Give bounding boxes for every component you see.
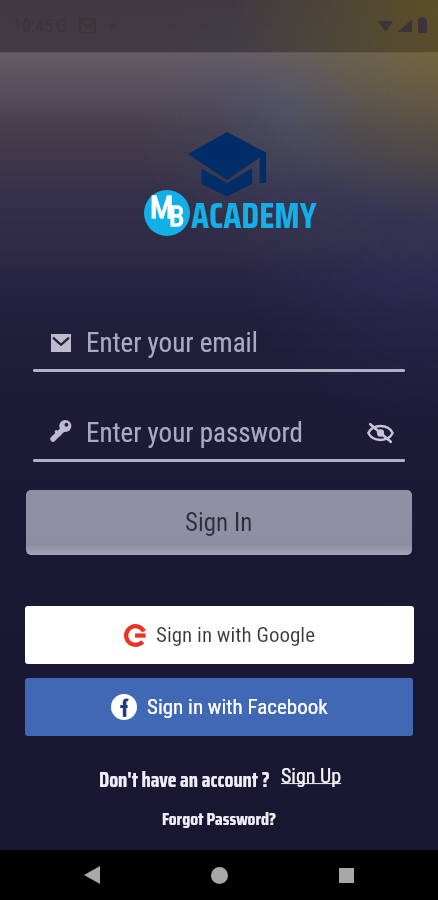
button[interactable]: Enter your password xyxy=(33,416,405,464)
staticText: ACADEMY xyxy=(191,187,317,244)
staticText: Enter your password xyxy=(86,417,303,449)
staticText: Sign Up xyxy=(281,764,342,787)
button[interactable]: Sign in with Google xyxy=(25,606,414,664)
staticText: M xyxy=(150,189,174,225)
button[interactable]: Sign Up xyxy=(281,764,342,787)
staticText: Sign in with Facebook xyxy=(147,695,328,720)
staticText: B xyxy=(169,200,185,233)
button[interactable]: Show password xyxy=(358,417,402,449)
button[interactable]: Recent apps xyxy=(322,851,370,899)
staticText: Forgot Password? xyxy=(0,805,438,829)
button[interactable]: Back xyxy=(68,851,116,899)
button[interactable]: Home xyxy=(195,851,243,899)
staticText: Don't have an account ? xyxy=(99,764,270,796)
button[interactable]: Sign In xyxy=(26,490,412,555)
button[interactable]: Sign in with Facebook xyxy=(25,678,413,736)
staticText: Enter your email xyxy=(86,327,258,359)
button[interactable]: Forgot Password? xyxy=(0,805,438,829)
button[interactable]: Enter your email xyxy=(33,326,405,374)
staticText: Sign In xyxy=(185,508,253,537)
staticText: Sign in with Google xyxy=(156,623,316,648)
